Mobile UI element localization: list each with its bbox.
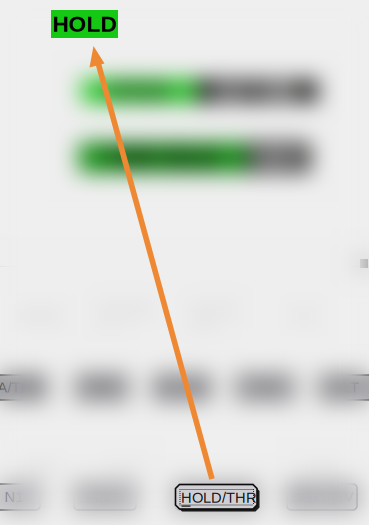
staticText: LVL CH [156,379,207,396]
staticText: APPR [21,464,54,477]
button[interactable]: SPD [76,375,128,400]
staticText: N1 [4,489,23,505]
staticText: A/THR [0,379,42,396]
button[interactable]: HOLD/THR [175,484,257,510]
staticText: HOLD [52,11,116,37]
button[interactable]: SPD INTV [287,484,357,510]
staticText: SPEED [106,80,172,102]
button[interactable]: A/THR [0,375,46,400]
staticText: LOC [111,464,136,477]
button[interactable]: FLCH [74,484,136,510]
button[interactable]: N1 [0,484,40,510]
staticText: ALT CRZ [215,80,298,102]
staticText: VNAV [306,464,338,477]
staticText: SPD INTV [290,490,353,504]
staticText: V/S [253,379,277,396]
staticText: NAV [252,143,303,172]
button[interactable]: ALT [319,375,369,400]
staticText: THR IDLE [105,143,220,172]
staticText: HOLD/THR [181,489,257,506]
button[interactable]: HOLD/THR [0,0,369,525]
staticText: ALT [333,379,359,396]
staticText: SPD [86,379,117,396]
button[interactable]: V/S [236,375,294,400]
staticText: HOLD/THR [181,490,250,504]
button[interactable]: LVL CH [154,375,210,400]
